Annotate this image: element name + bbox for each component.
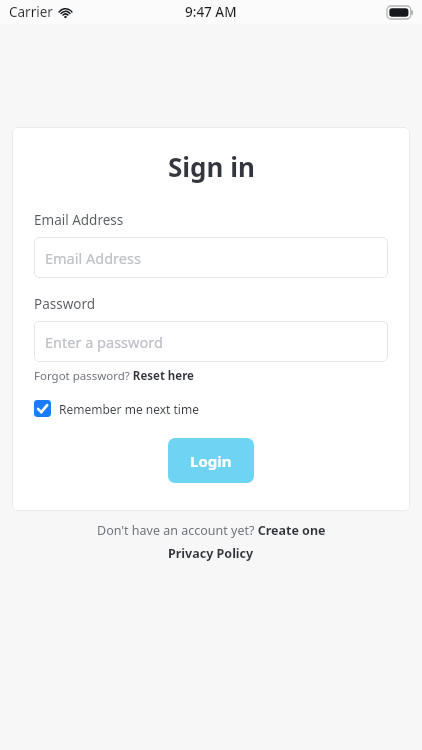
staticText: Forgot password? Reset here	[34, 368, 194, 384]
button[interactable]: Enter a password	[34, 321, 388, 362]
button[interactable]: Login	[168, 438, 254, 483]
other: Remember me checkbox	[34, 400, 51, 417]
button[interactable]: Forgot password? Reset here	[34, 368, 194, 384]
staticText: Carrier	[9, 3, 53, 21]
staticText: 9:47 AM	[185, 3, 237, 21]
staticText: Don't have an account yet? Create one	[97, 522, 326, 539]
staticText: Email Address	[34, 211, 124, 229]
staticText: Login	[190, 451, 232, 471]
staticText: Enter a password	[45, 332, 163, 352]
button[interactable]: Privacy Policy	[168, 545, 254, 562]
staticText: Password	[34, 295, 96, 313]
staticText: Privacy Policy	[168, 545, 254, 562]
button[interactable]: Email Address	[34, 237, 388, 278]
button[interactable]: Don't have an account yet? Create one	[97, 522, 326, 539]
button[interactable]: Remember me checkbox	[34, 400, 199, 417]
staticText: Sign in	[168, 149, 255, 184]
staticText: Email Address	[45, 248, 141, 268]
staticText: Remember me next time	[59, 401, 199, 417]
